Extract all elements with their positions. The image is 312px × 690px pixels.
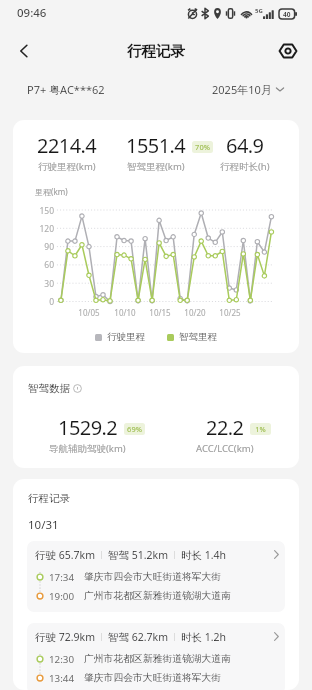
staticText: 1551.4 <box>126 132 186 159</box>
staticText: 里程(km) <box>35 186 68 197</box>
staticText: 导航辅助驾驶(km) <box>49 442 126 455</box>
staticText: 行驶 65.7km <box>35 548 95 562</box>
staticText: 2025年10月 <box>212 82 272 97</box>
staticText: 10/10 <box>114 307 136 318</box>
staticText: 30 <box>44 278 54 289</box>
staticText: 行驶里程(km) <box>38 160 96 173</box>
staticText: 时长 1.4h <box>181 548 227 562</box>
staticText: 120 <box>39 223 54 234</box>
staticText: 09:46 <box>17 5 47 21</box>
button[interactable]: Settings <box>271 34 305 68</box>
button[interactable]: 行驶 65.7km <box>27 541 285 612</box>
staticText: 2214.4 <box>37 132 97 159</box>
staticText: 智驾里程 <box>179 331 217 343</box>
staticText: 90 <box>44 241 54 252</box>
staticText: 智驾 51.2km <box>108 548 168 562</box>
staticText: 行程记录 <box>28 492 70 505</box>
staticText: 智驾里程(km) <box>127 160 185 173</box>
staticText: 10/20 <box>184 307 206 318</box>
staticText: 肇庆市四会市大旺街道将军大街 <box>84 672 222 684</box>
staticText: 13:44 <box>49 672 75 685</box>
button[interactable]: Back <box>7 34 41 68</box>
staticText: 行程记录 <box>127 42 185 60</box>
staticText: 12:30 <box>49 653 75 666</box>
staticText: 1% <box>255 424 266 434</box>
staticText: 150 <box>39 205 54 216</box>
staticText: 17:34 <box>49 571 75 584</box>
staticText: 广州市花都区新雅街道镜湖大道南 <box>84 590 231 602</box>
staticText: 0 <box>49 296 54 307</box>
button[interactable]: 2025年10月 <box>212 78 284 101</box>
staticText: 5G <box>255 7 263 15</box>
staticText: 10/15 <box>149 307 171 318</box>
staticText: 行驶里程 <box>107 331 145 343</box>
staticText: 智驾 62.7km <box>108 630 168 644</box>
staticText: 10/25 <box>219 307 241 318</box>
staticText: 40 <box>283 10 291 19</box>
staticText: 19:00 <box>49 590 75 603</box>
staticText: P7+ 粤AC***62 <box>27 82 105 97</box>
staticText: 69% <box>127 424 142 434</box>
staticText: 时长 1.2h <box>181 630 227 644</box>
staticText: 行程时长(h) <box>220 160 270 173</box>
button[interactable]: 行驶 72.9km <box>27 623 285 690</box>
staticText: 10/31 <box>28 517 59 533</box>
staticText: 智驾数据 <box>28 382 70 395</box>
staticText: ACC/LCC(km) <box>196 442 254 455</box>
staticText: 70% <box>195 142 210 152</box>
staticText: 60 <box>44 259 54 270</box>
staticText: 64.9 <box>226 132 264 159</box>
staticText: 肇庆市四会市大旺街道将军大街 <box>84 571 222 583</box>
staticText: 行驶 72.9km <box>35 630 95 644</box>
staticText: 10/05 <box>78 307 100 318</box>
staticText: 广州市花都区新雅街道镜湖大道南 <box>84 653 231 665</box>
button[interactable]: P7+ 粤AC***62 <box>27 78 105 101</box>
staticText: 22.2 <box>206 414 244 441</box>
staticText: 1529.2 <box>58 414 118 441</box>
